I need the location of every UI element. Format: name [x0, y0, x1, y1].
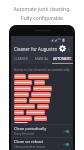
button[interactable] — [14, 116, 32, 121]
button[interactable] — [14, 80, 32, 85]
staticText: Clean periodically — [14, 126, 47, 131]
button[interactable]: More options — [67, 46, 71, 52]
staticText: Automate junk cleaning, — [13, 6, 71, 13]
staticText: Clean on reboot — [14, 139, 44, 144]
staticText: Items to be cleaned automatically — [14, 67, 70, 72]
staticText: Cleaner for Augustro — [14, 46, 58, 52]
button[interactable]: Clean periodically — [11, 125, 73, 137]
button[interactable]: CLEANER — [11, 54, 31, 63]
staticText: MANUAL — [35, 57, 49, 61]
button[interactable] — [37, 104, 49, 109]
button[interactable] — [14, 92, 29, 97]
button[interactable]: MANUAL — [31, 54, 52, 63]
button[interactable]: Settings — [58, 44, 67, 53]
button[interactable] — [14, 98, 27, 103]
button[interactable] — [14, 74, 26, 79]
button[interactable]: AUTOMATIC — [52, 54, 73, 63]
staticText: Every 6 hour(s) — [14, 132, 35, 136]
button[interactable] — [14, 122, 28, 123]
button[interactable]: Clean on reboot — [11, 138, 73, 150]
button[interactable] — [28, 74, 49, 79]
button[interactable] — [29, 98, 50, 103]
staticText: CLEANER — [14, 57, 28, 61]
button[interactable] — [14, 104, 35, 109]
button[interactable] — [33, 86, 52, 91]
button[interactable] — [14, 86, 31, 91]
button[interactable] — [34, 80, 45, 85]
button[interactable]: Toggle Clean on reboot — [62, 140, 70, 148]
button[interactable] — [26, 110, 45, 115]
button[interactable] — [14, 110, 24, 115]
staticText: Clean junk after restart — [14, 145, 46, 149]
staticText: Fully configurable — [21, 15, 63, 22]
button[interactable] — [31, 92, 51, 97]
button[interactable] — [34, 116, 47, 121]
staticText: AUTOMATIC — [53, 57, 72, 61]
button[interactable]: Toggle Clean periodically — [62, 127, 70, 135]
